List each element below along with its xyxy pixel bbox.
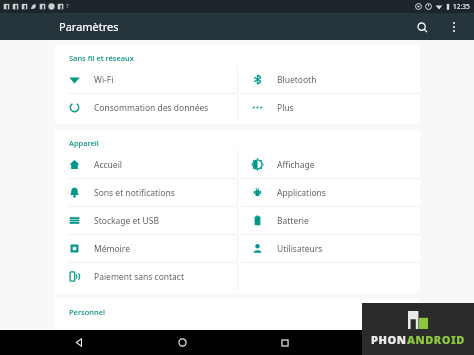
button[interactable]: Utilisateurs bbox=[238, 235, 420, 262]
staticText: Consommation des données bbox=[94, 102, 209, 114]
staticText: Wi-Fi bbox=[94, 74, 114, 86]
button[interactable]: Plus bbox=[238, 94, 420, 121]
staticText: Sans fil et réseaux bbox=[69, 53, 134, 63]
button[interactable]: Affichage bbox=[238, 151, 420, 178]
button[interactable]: Retour bbox=[62, 330, 96, 355]
staticText: 7 bbox=[66, 3, 69, 10]
button[interactable]: Consommation des données bbox=[55, 94, 237, 121]
staticText: Appareil bbox=[69, 138, 99, 148]
staticText: Plus bbox=[277, 102, 294, 114]
button[interactable]: Accueil bbox=[55, 151, 237, 178]
button[interactable]: Plus d'options bbox=[444, 17, 464, 37]
button[interactable]: Accueil bbox=[165, 330, 199, 355]
staticText: Utilisateurs bbox=[277, 243, 323, 255]
staticText: 12:35 bbox=[453, 2, 470, 11]
button[interactable]: Bluetooth bbox=[238, 66, 420, 93]
staticText: Sons et notifications bbox=[94, 187, 175, 199]
staticText: Batterie bbox=[277, 215, 309, 227]
staticText: Mémoire bbox=[94, 243, 130, 255]
staticText: Affichage bbox=[277, 159, 315, 171]
button[interactable]: Applications récentes bbox=[268, 330, 302, 355]
staticText: Personnel bbox=[69, 307, 106, 317]
staticText: Accueil bbox=[94, 159, 123, 171]
staticText: Bluetooth bbox=[277, 74, 317, 86]
staticText: Paiement sans contact bbox=[94, 271, 185, 283]
button[interactable]: Mémoire bbox=[55, 235, 237, 262]
staticText: ANDROID bbox=[407, 332, 465, 347]
button[interactable]: Sons et notifications bbox=[55, 179, 237, 206]
staticText: Applications bbox=[277, 187, 326, 199]
button[interactable]: Batterie bbox=[238, 207, 420, 234]
button[interactable]: Stockage et USB bbox=[55, 207, 237, 234]
staticText: Paramètres bbox=[59, 19, 119, 34]
staticText: PHON bbox=[371, 332, 407, 347]
button[interactable]: Wi-Fi bbox=[55, 66, 237, 93]
staticText: Stockage et USB bbox=[94, 215, 159, 227]
button[interactable]: Applications bbox=[238, 179, 420, 206]
button[interactable]: Rechercher bbox=[412, 17, 432, 37]
button[interactable]: Paiement sans contact bbox=[55, 263, 237, 290]
